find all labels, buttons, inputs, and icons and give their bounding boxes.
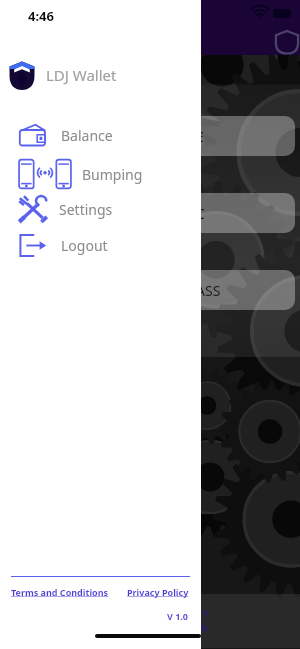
staticText: Bumping	[82, 165, 143, 184]
button[interactable]: Balance	[0, 119, 201, 151]
button[interactable]: Logout	[0, 229, 201, 261]
staticText: Settings	[59, 200, 113, 219]
other: Balance	[18, 123, 48, 148]
button[interactable]: Settings	[0, 193, 201, 225]
staticText: V 1.0	[167, 610, 189, 622]
button[interactable]: Terms and Conditions	[11, 586, 109, 598]
button[interactable]: Privacy Policy	[127, 586, 189, 598]
other: Logout	[18, 233, 48, 258]
button[interactable]: Settings	[183, 607, 212, 636]
staticText: E	[196, 127, 204, 146]
button[interactable]: C	[187, 193, 295, 233]
button[interactable]: Bumping	[0, 158, 201, 190]
staticText: 4:46	[28, 7, 54, 25]
staticText: Balance	[61, 126, 113, 145]
other: Settings	[18, 195, 48, 223]
staticText: Logout	[61, 236, 108, 255]
staticText: ASS	[196, 281, 221, 300]
button[interactable]: E	[187, 116, 295, 156]
other: Bumping	[18, 158, 72, 190]
staticText: C	[196, 204, 205, 223]
staticText: LDJ Wallet	[46, 65, 117, 85]
button[interactable]: LDJ Wallet	[0, 58, 201, 92]
button[interactable]: ASS	[187, 270, 295, 310]
